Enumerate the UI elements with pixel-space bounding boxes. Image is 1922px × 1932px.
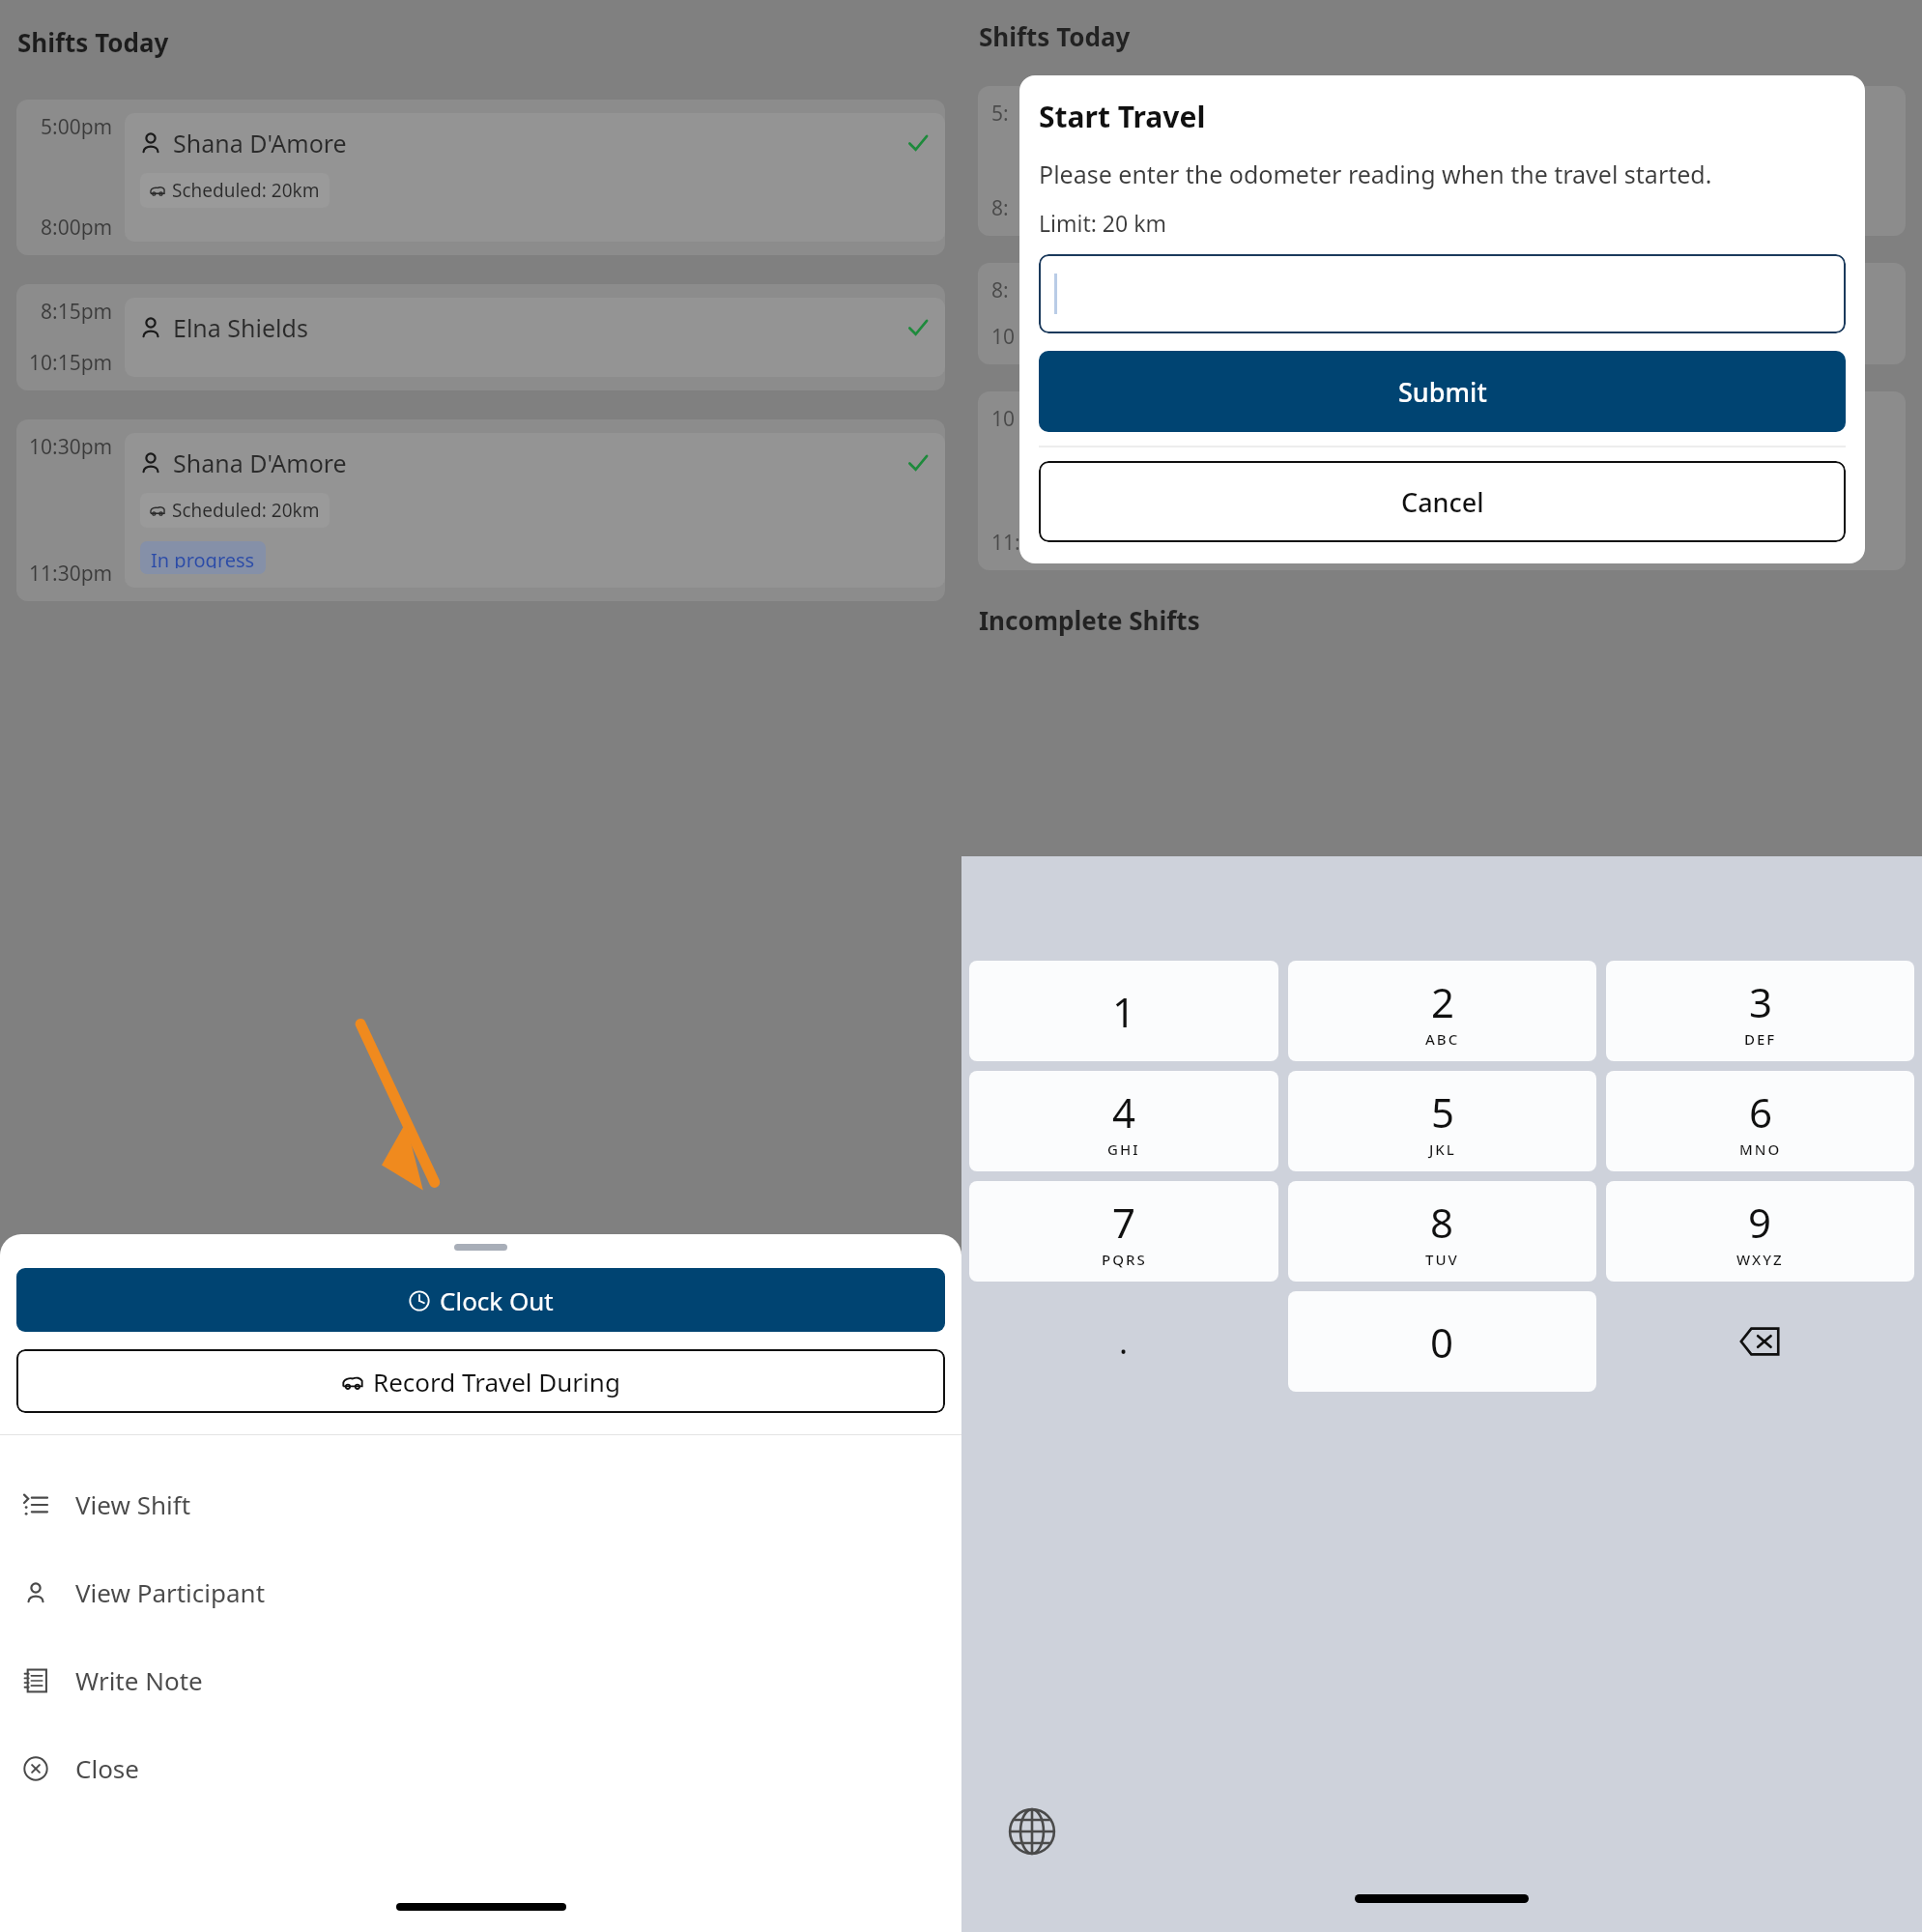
staticText: ABC: [1425, 1029, 1460, 1049]
button[interactable]: 10:30pm: [16, 419, 945, 601]
staticText: Limit: 20 km: [1039, 208, 1166, 238]
button[interactable]: View Shift: [0, 1460, 961, 1548]
staticText: MNO: [1739, 1139, 1782, 1159]
button[interactable]: Submit: [1039, 351, 1846, 432]
staticText: GHI: [1107, 1139, 1140, 1159]
staticText: TUV: [1425, 1250, 1459, 1269]
staticText: View Participant: [75, 1575, 266, 1609]
staticText: DEF: [1744, 1029, 1777, 1049]
button[interactable]: Clock Out: [16, 1268, 945, 1332]
staticText: 10:30pm: [29, 433, 113, 461]
staticText: Incomplete Shifts: [979, 603, 1200, 637]
staticText: .: [1119, 1319, 1129, 1364]
staticText: Shana D'Amore: [173, 127, 347, 159]
staticText: In progress: [151, 547, 255, 568]
staticText: 7: [1112, 1195, 1136, 1250]
button[interactable]: Record Travel During: [16, 1349, 945, 1413]
staticText: 10:15pm: [29, 349, 113, 377]
staticText: 2: [1431, 974, 1455, 1029]
staticText: Record Travel During: [373, 1365, 620, 1399]
staticText: Shana D'Amore: [173, 447, 347, 479]
staticText: 11:30pm: [29, 560, 113, 588]
staticText: Scheduled: 20km: [172, 498, 320, 523]
button[interactable]: View Participant: [0, 1548, 961, 1636]
staticText: Submit: [1398, 374, 1487, 410]
staticText: Please enter the odometer reading when t…: [1039, 158, 1712, 190]
staticText: 8:00pm: [41, 214, 113, 242]
button[interactable]: 4: [969, 1071, 1278, 1171]
button[interactable]: Close: [0, 1724, 961, 1812]
button[interactable]: 1: [969, 961, 1278, 1061]
staticText: 4: [1112, 1084, 1136, 1139]
staticText: Close: [75, 1751, 139, 1785]
staticText: Start Travel: [1039, 97, 1206, 136]
staticText: 0: [1430, 1314, 1454, 1370]
button[interactable]: Cancel: [1039, 461, 1846, 542]
staticText: 10: [991, 405, 1016, 433]
button[interactable]: Write Note: [0, 1636, 961, 1724]
staticText: 10: [991, 323, 1016, 351]
staticText: 6: [1749, 1084, 1773, 1139]
staticText: WXYZ: [1736, 1250, 1784, 1269]
button[interactable]: 7: [969, 1181, 1278, 1282]
staticText: 5:00pm: [41, 113, 113, 141]
staticText: 5:: [991, 100, 1009, 128]
button[interactable]: Backspace: [1606, 1291, 1914, 1392]
staticText: Scheduled: 20km: [172, 178, 320, 203]
button[interactable]: .: [969, 1291, 1278, 1392]
staticText: Cancel: [1401, 484, 1484, 520]
button[interactable]: 3: [1606, 961, 1914, 1061]
staticText: Shifts Today: [979, 19, 1131, 53]
staticText: 11:30pm: [991, 529, 1076, 557]
staticText: JKL: [1429, 1139, 1456, 1159]
button[interactable]: [1039, 254, 1846, 333]
staticText: Write Note: [75, 1663, 203, 1697]
button[interactable]: Change keyboard language: [1004, 1803, 1060, 1860]
button[interactable]: 5: [1288, 1071, 1596, 1171]
staticText: 8:15pm: [41, 298, 113, 326]
staticText: Elna Shields: [173, 311, 308, 344]
staticText: 5: [1431, 1084, 1455, 1139]
button[interactable]: 0: [1288, 1291, 1596, 1392]
staticText: 8:: [991, 276, 1009, 304]
staticText: 8: [1430, 1195, 1454, 1250]
staticText: View Shift: [75, 1487, 191, 1521]
staticText: 9: [1748, 1195, 1772, 1250]
staticText: 3: [1749, 974, 1773, 1029]
staticText: 1: [1112, 984, 1136, 1039]
staticText: PQRS: [1102, 1250, 1147, 1269]
button[interactable]: 2: [1288, 961, 1596, 1061]
staticText: 8:: [991, 194, 1009, 222]
button[interactable]: 8: [1288, 1181, 1596, 1282]
staticText: Shifts Today: [17, 25, 169, 59]
staticText: Clock Out: [440, 1283, 554, 1317]
button[interactable]: 9: [1606, 1181, 1914, 1282]
button[interactable]: 6: [1606, 1071, 1914, 1171]
button[interactable]: 8:15pm: [16, 284, 945, 390]
button[interactable]: 5:00pm: [16, 100, 945, 255]
